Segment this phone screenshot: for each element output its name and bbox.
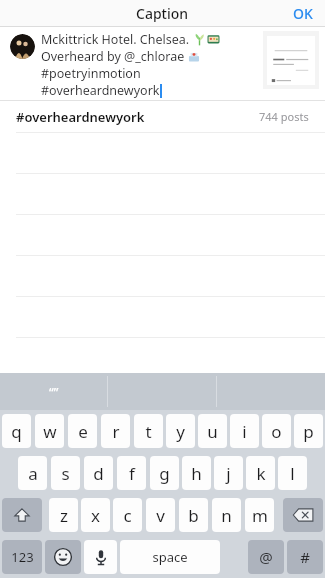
button[interactable]: l bbox=[278, 456, 307, 490]
button[interactable]: v bbox=[146, 498, 175, 532]
staticText: p bbox=[303, 420, 314, 443]
staticText: #poetryinmotion bbox=[41, 65, 141, 82]
button[interactable]: q bbox=[2, 414, 31, 448]
staticText: s bbox=[61, 462, 70, 485]
button[interactable]: j bbox=[214, 456, 243, 490]
button[interactable]: d bbox=[84, 456, 113, 490]
staticText: o bbox=[271, 420, 282, 443]
button[interactable]: p bbox=[294, 414, 323, 448]
button[interactable]: Emoji bbox=[45, 540, 81, 574]
staticText: @ bbox=[259, 547, 273, 567]
button[interactable]: Backspace bbox=[283, 498, 323, 532]
button[interactable]: c bbox=[113, 498, 142, 532]
staticText: Overheard by @_chlorae bbox=[41, 48, 188, 65]
staticText: v bbox=[156, 504, 165, 527]
button[interactable]: space bbox=[120, 540, 220, 574]
staticText: y bbox=[176, 420, 185, 443]
staticText: x bbox=[91, 504, 100, 527]
staticText: Mckittrick Hotel. Chelsea. bbox=[41, 31, 193, 48]
button[interactable]: t bbox=[134, 414, 163, 448]
staticText: space bbox=[152, 548, 188, 566]
button[interactable]: y bbox=[166, 414, 195, 448]
staticText: d bbox=[93, 462, 104, 485]
button[interactable]: m bbox=[245, 498, 274, 532]
button[interactable]: b bbox=[179, 498, 208, 532]
button[interactable]: Shift bbox=[2, 498, 42, 532]
staticText: #overheardnewyork bbox=[41, 82, 160, 99]
staticText: r bbox=[112, 420, 120, 443]
button[interactable]: x bbox=[81, 498, 110, 532]
staticText: z bbox=[60, 504, 68, 527]
staticText: 123 bbox=[11, 548, 34, 566]
staticText: k bbox=[256, 462, 266, 485]
button[interactable]: u bbox=[198, 414, 227, 448]
staticText: c bbox=[123, 504, 132, 527]
button[interactable]: i bbox=[230, 414, 259, 448]
staticText: # bbox=[300, 547, 310, 567]
button[interactable]: 123 bbox=[2, 540, 42, 574]
staticText: j bbox=[226, 462, 231, 485]
staticText: “” bbox=[49, 383, 59, 401]
button[interactable]: #overheardnewyork bbox=[0, 101, 325, 132]
button[interactable]: Voice input bbox=[84, 540, 117, 574]
staticText: w bbox=[43, 420, 57, 443]
button[interactable]: e bbox=[68, 414, 97, 448]
staticText: u bbox=[207, 420, 218, 443]
button[interactable]: z bbox=[49, 498, 78, 532]
button[interactable]: g bbox=[150, 456, 179, 490]
button[interactable]: f bbox=[117, 456, 146, 490]
staticText: n bbox=[221, 504, 232, 527]
staticText: Caption bbox=[136, 4, 189, 23]
button[interactable]: OK bbox=[293, 0, 313, 26]
staticText: e bbox=[78, 420, 88, 443]
staticText: 744 posts bbox=[259, 109, 309, 124]
staticText: #overheardnewyork bbox=[16, 108, 145, 126]
button[interactable]: # bbox=[287, 540, 323, 574]
staticText: a bbox=[28, 462, 38, 485]
button[interactable]: “” bbox=[0, 373, 107, 410]
staticText: b bbox=[188, 504, 199, 527]
button[interactable]: a bbox=[18, 456, 47, 490]
staticText: f bbox=[129, 462, 135, 485]
staticText: q bbox=[11, 420, 22, 443]
staticText: l bbox=[290, 462, 295, 485]
staticText: t bbox=[145, 420, 152, 443]
staticText: i bbox=[242, 420, 247, 443]
button[interactable]: r bbox=[101, 414, 130, 448]
button[interactable]: @ bbox=[248, 540, 284, 574]
button[interactable]: s bbox=[51, 456, 80, 490]
staticText: OK bbox=[293, 4, 313, 23]
button[interactable]: n bbox=[212, 498, 241, 532]
button[interactable] bbox=[263, 31, 319, 89]
button[interactable]: o bbox=[262, 414, 291, 448]
button[interactable]: k bbox=[246, 456, 275, 490]
staticText: h bbox=[191, 462, 202, 485]
staticText: g bbox=[159, 462, 170, 485]
button[interactable]: w bbox=[35, 414, 64, 448]
button[interactable]: h bbox=[182, 456, 211, 490]
staticText: m bbox=[252, 504, 268, 527]
